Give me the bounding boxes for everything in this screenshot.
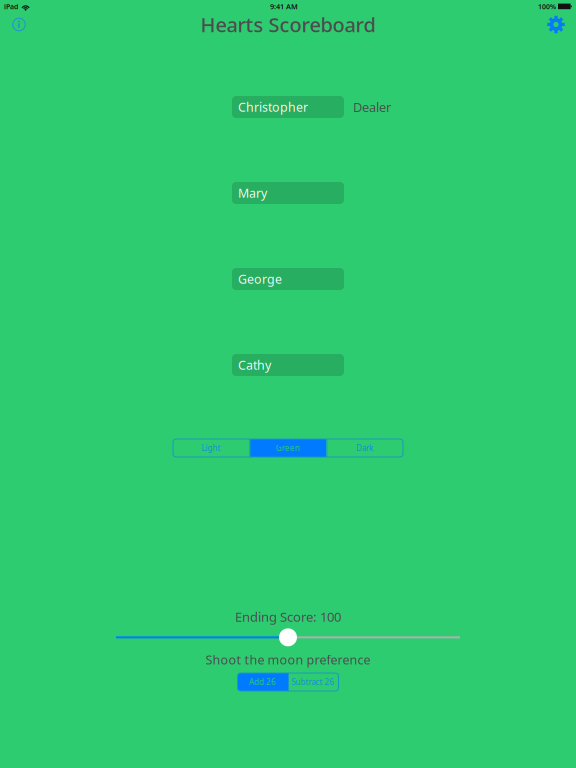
staticText: Christopher	[238, 99, 308, 115]
staticText: Dealer	[353, 98, 391, 115]
staticText: Light	[202, 443, 221, 453]
staticText: George	[238, 271, 282, 287]
staticText: Subtract 26	[292, 677, 335, 687]
staticText: Dark	[356, 443, 373, 453]
staticText: Shoot the moon preference	[205, 651, 370, 668]
staticText: Hearts Scoreboard	[200, 11, 375, 38]
staticText: Ending Score: 100	[235, 608, 341, 625]
staticText: 9:41 AM	[270, 2, 298, 11]
button[interactable]: George	[232, 268, 344, 290]
button[interactable]: Dark	[326, 439, 403, 457]
button[interactable]: Light	[173, 439, 250, 457]
staticText: Mary	[238, 185, 267, 201]
button[interactable]: Info	[11, 16, 27, 32]
button[interactable]: Green	[250, 439, 326, 457]
button[interactable]: Settings	[547, 15, 565, 33]
button[interactable]: Subtract 26	[288, 673, 338, 691]
staticText: Add 26	[249, 677, 276, 687]
button[interactable]: Mary	[232, 182, 344, 204]
button[interactable]: Cathy	[232, 354, 344, 376]
staticText: 100%	[538, 2, 556, 11]
staticText: Green	[276, 443, 300, 453]
button[interactable]: Christopher	[232, 96, 344, 118]
staticText: iPad	[4, 2, 18, 11]
staticText: Cathy	[238, 357, 271, 373]
button[interactable]: Add 26	[237, 673, 288, 691]
